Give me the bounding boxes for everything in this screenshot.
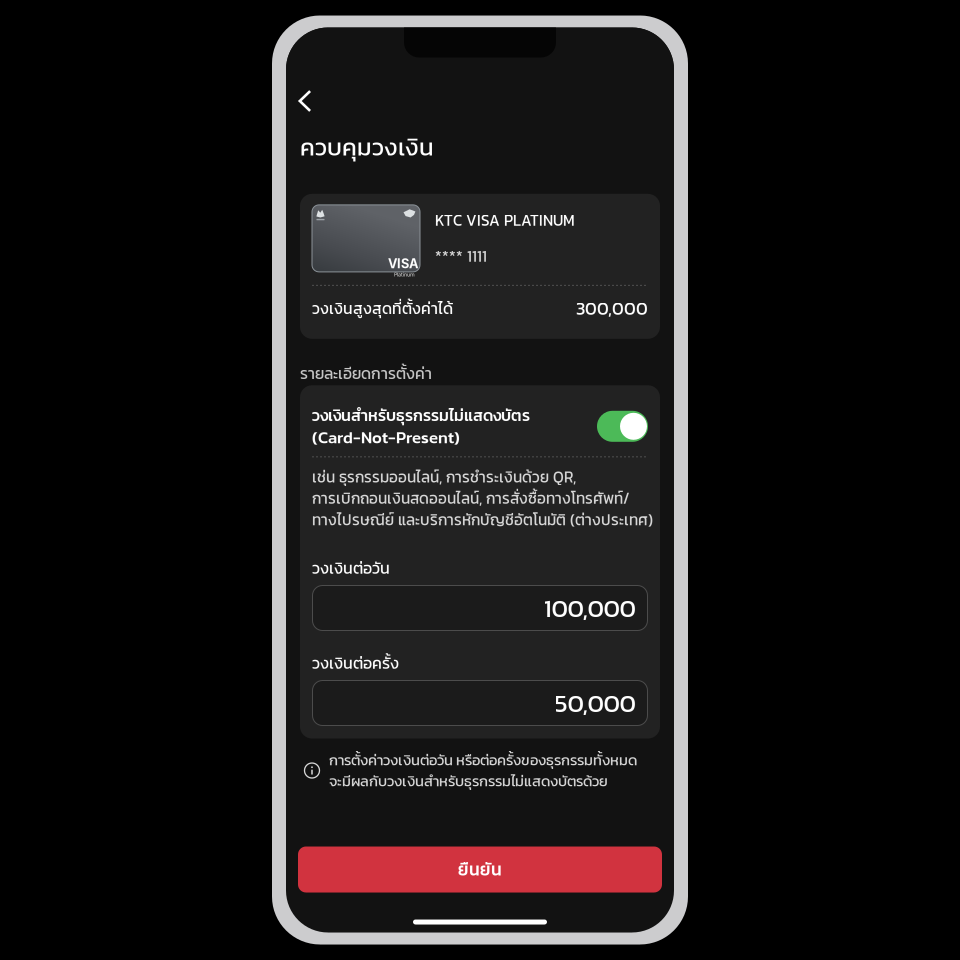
staticText: เช่น ธุรกรรมออนไลน์, การชำระเงินด้วย QR, [312, 466, 576, 488]
staticText: Platinum [394, 271, 415, 278]
staticText: วงเงินสำหรับธุรกรรมไม่แสดงบัตร [312, 403, 530, 427]
staticText: KTC VISA PLATINUM [435, 209, 575, 232]
staticText: การเบิกถอนเงินสดออนไลน์, การสั่งซื้อทางโ… [312, 487, 630, 510]
staticText: การตั้งค่าวงเงินต่อวัน หรือต่อครั้งของธุ… [329, 749, 637, 771]
staticText: 50,000 [554, 684, 635, 722]
staticText: 300,000 [576, 295, 648, 322]
staticText: ทางไปรษณีย์ และบริการหักบัญชีอัตโนมัติ (… [312, 508, 653, 531]
staticText: รายละเอียดการตั้งค่า [300, 362, 432, 385]
staticText: ยืนยัน [458, 856, 502, 882]
staticText: วงเงินสูงสุดที่ตั้งค่าได้ [312, 297, 453, 320]
staticText: จะมีผลกับวงเงินสำหรับธุรกรรมไม่แสดงบัตรด… [329, 770, 608, 792]
staticText: วงเงินต่อครั้ง [312, 651, 399, 675]
button[interactable]: ยืนยัน [298, 846, 662, 892]
staticText: **** 1111 [435, 245, 487, 268]
button[interactable]: Back [298, 81, 342, 121]
button[interactable]: Card not present limit [597, 411, 648, 442]
button[interactable]: 100,000 [312, 585, 647, 630]
button[interactable]: 50,000 [312, 680, 647, 725]
staticText: 100,000 [543, 589, 635, 627]
staticText: (Card-Not-Present) [312, 425, 460, 450]
staticText: VISA [388, 256, 418, 271]
staticText: วงเงินต่อวัน [312, 556, 390, 580]
staticText: ควบคุมวงเงิน [300, 129, 434, 165]
